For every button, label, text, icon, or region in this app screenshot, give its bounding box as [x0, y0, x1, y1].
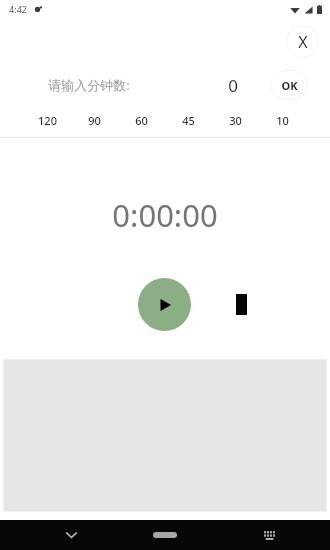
staticText: 10 — [276, 113, 289, 128]
staticText: 90 — [88, 113, 101, 128]
button[interactable]: 10 — [259, 106, 306, 134]
staticText: 30 — [229, 113, 242, 128]
button[interactable]: Close — [286, 25, 319, 58]
staticText: X — [298, 31, 308, 53]
staticText: 45 — [182, 113, 195, 128]
button[interactable]: Switch keyboard — [254, 520, 284, 550]
button[interactable]: 60 — [118, 106, 165, 134]
button[interactable]: 120 — [24, 106, 71, 134]
button[interactable]: Back — [56, 520, 86, 550]
staticText: 4:42 — [9, 3, 27, 15]
button[interactable]: 0 — [208, 70, 258, 100]
button[interactable]: 90 — [71, 106, 118, 134]
staticText: 60 — [135, 113, 148, 128]
staticText: 0:00:00 — [112, 194, 218, 236]
staticText: 请输入分钟数: — [48, 76, 130, 94]
staticText: OK — [281, 78, 298, 93]
button[interactable]: Stop timer — [227, 287, 255, 321]
button[interactable]: 45 — [165, 106, 212, 134]
button[interactable]: 30 — [212, 106, 259, 134]
staticText: 0 — [228, 74, 238, 97]
button[interactable]: Home — [143, 524, 187, 546]
button[interactable]: OK — [270, 70, 308, 100]
staticText: 120 — [38, 113, 57, 128]
button[interactable]: Start timer — [138, 278, 191, 331]
